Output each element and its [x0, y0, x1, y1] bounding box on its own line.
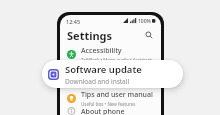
- staticText: About phone: [81, 107, 125, 115]
- staticText: Tips and user manual: [81, 90, 153, 100]
- staticText: Download and install: [65, 77, 130, 86]
- staticText: TalkBack • Mono audio • Assistant menu: [81, 57, 155, 62]
- staticText: Settings: [67, 28, 113, 43]
- button[interactable]: Software update: [42, 60, 183, 88]
- staticText: 12:45: [66, 18, 81, 25]
- staticText: Software update: [65, 63, 142, 76]
- button[interactable]: Tips and user manual: [60, 90, 161, 106]
- staticText: Useful tips • New features: [81, 101, 136, 106]
- staticText: Accessibility: [81, 46, 122, 56]
- button[interactable]: Accessibility: [60, 46, 161, 62]
- staticText: 100%: [138, 18, 151, 25]
- button[interactable]: About phone: [60, 107, 161, 115]
- button[interactable]: Search: [143, 29, 155, 41]
